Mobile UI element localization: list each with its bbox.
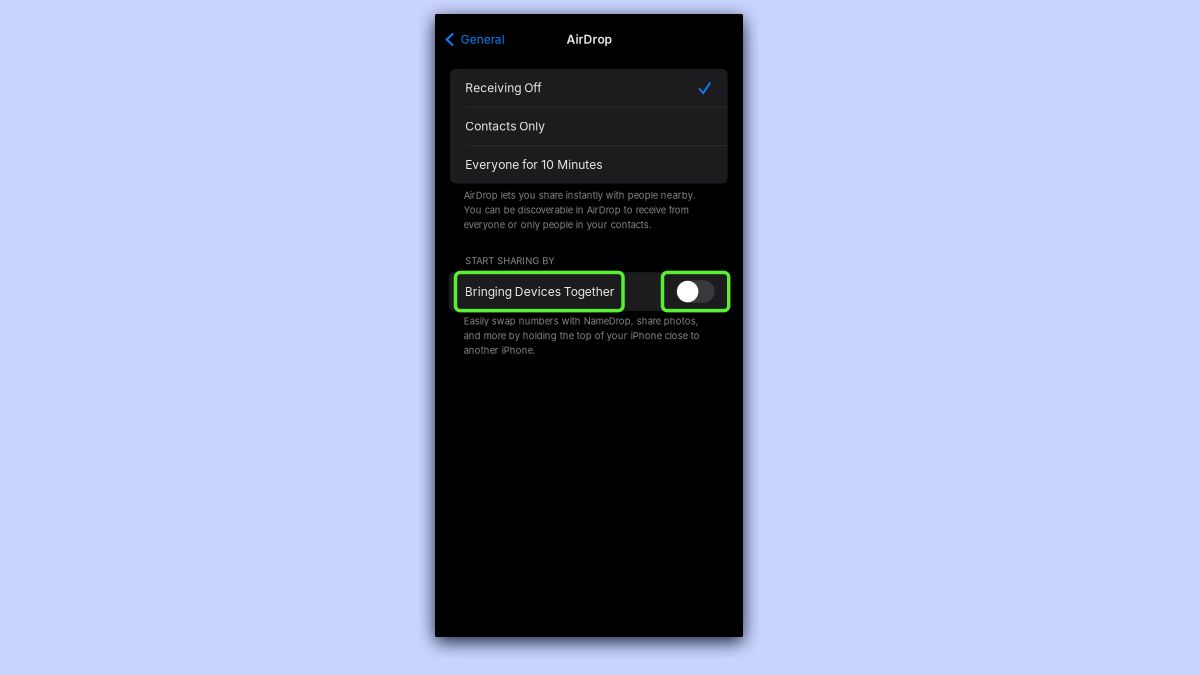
staticText: Easily swap numbers with NameDrop, share…: [464, 315, 700, 356]
button[interactable]: Bringing Devices Together: [662, 272, 729, 311]
staticText: General: [461, 32, 505, 47]
button[interactable]: Everyone for 10 Minutes: [450, 146, 728, 183]
staticText: Receiving Off: [465, 80, 541, 95]
staticText: Everyone for 10 Minutes: [465, 157, 602, 172]
button[interactable]: Receiving Off: [450, 69, 728, 107]
staticText: AirDrop lets you share instantly with pe…: [464, 190, 696, 230]
button[interactable]: Contacts Only: [450, 107, 728, 145]
staticText: START SHARING BY: [465, 255, 554, 266]
staticText: Bringing Devices Together: [465, 284, 615, 299]
button[interactable]: General: [435, 26, 505, 53]
staticText: Contacts Only: [465, 119, 545, 133]
button[interactable]: Bringing Devices Together: [455, 272, 623, 311]
staticText: AirDrop: [566, 32, 611, 47]
